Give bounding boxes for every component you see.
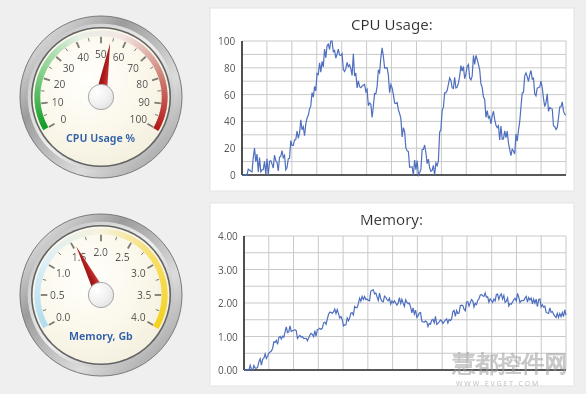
button[interactable]: Memory gauge [20,214,183,377]
button[interactable]: CPU usage chart [210,8,574,191]
button[interactable]: CPU usage gauge [20,16,183,179]
button[interactable]: Memory chart [210,203,574,386]
